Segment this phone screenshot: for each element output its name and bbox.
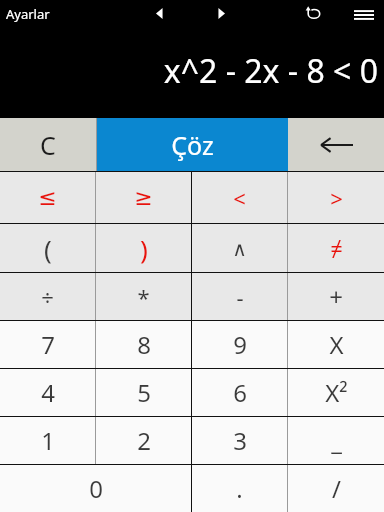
staticText: Ayarlar — [6, 5, 50, 23]
button[interactable]: X — [288, 321, 384, 368]
button[interactable]: Backspace — [288, 118, 384, 171]
button[interactable]: . — [192, 465, 287, 512]
button[interactable]: ( — [0, 224, 95, 272]
button[interactable]: > — [288, 172, 384, 223]
staticText: . — [236, 472, 243, 505]
button[interactable]: Menu — [350, 1, 378, 29]
button[interactable]: ) — [96, 224, 191, 272]
button[interactable]: Çöz — [97, 118, 288, 171]
button[interactable]: ≤ — [0, 172, 95, 223]
staticText: 0 — [89, 472, 103, 505]
staticText: * — [137, 282, 150, 312]
staticText: ÷ — [41, 282, 54, 312]
button[interactable]: 7 — [0, 321, 95, 368]
staticText: 8 — [137, 328, 151, 361]
button[interactable]: 1 — [0, 417, 95, 464]
button[interactable]: Undo — [301, 1, 325, 25]
button[interactable]: Move cursor right — [210, 2, 232, 24]
button[interactable]: 6 — [192, 369, 287, 416]
button[interactable]: Move cursor left — [148, 2, 170, 24]
staticText: - — [236, 282, 244, 312]
staticText: X² — [325, 376, 348, 409]
button[interactable]: ∧ — [192, 224, 287, 272]
button[interactable]: ÷ — [0, 273, 95, 320]
staticText: Çöz — [171, 128, 214, 162]
staticText: ∧ — [232, 237, 247, 260]
staticText: 2 — [137, 424, 151, 457]
button[interactable]: 8 — [96, 321, 191, 368]
staticText: 4 — [41, 376, 55, 409]
staticText: _ — [331, 424, 342, 457]
staticText: 3 — [233, 424, 247, 457]
staticText: ( — [44, 231, 52, 266]
staticText: 7 — [41, 328, 55, 361]
button[interactable]: * — [96, 273, 191, 320]
staticText: x^2 - 2x - 8 < 0 — [163, 49, 378, 93]
staticText: / — [332, 472, 341, 505]
staticText: 5 — [137, 376, 151, 409]
staticText: + — [329, 280, 343, 313]
staticText: C — [40, 128, 56, 162]
button[interactable]: ≠ — [288, 224, 384, 272]
button[interactable]: 3 — [192, 417, 287, 464]
button[interactable]: / — [288, 465, 384, 512]
staticText: 9 — [233, 328, 247, 361]
staticText: 6 — [233, 376, 247, 409]
button[interactable]: 4 — [0, 369, 95, 416]
button[interactable]: 9 — [192, 321, 287, 368]
button[interactable]: Ayarlar — [4, 3, 52, 25]
button[interactable]: ≥ — [96, 172, 191, 223]
staticText: < — [233, 183, 246, 213]
button[interactable]: < — [192, 172, 287, 223]
button[interactable]: C — [0, 118, 96, 171]
staticText: ) — [140, 231, 148, 266]
button[interactable]: - — [192, 273, 287, 320]
staticText: > — [330, 183, 343, 213]
button[interactable]: X² — [288, 369, 384, 416]
button[interactable]: + — [288, 273, 384, 320]
button[interactable]: 0 — [0, 465, 191, 512]
button[interactable]: _ — [288, 417, 384, 464]
button[interactable]: 2 — [96, 417, 191, 464]
staticText: 1 — [41, 424, 55, 457]
staticText: ≥ — [134, 185, 153, 211]
staticText: ≤ — [38, 185, 57, 211]
staticText: ≠ — [330, 233, 343, 263]
staticText: X — [329, 328, 344, 361]
button[interactable]: 5 — [96, 369, 191, 416]
